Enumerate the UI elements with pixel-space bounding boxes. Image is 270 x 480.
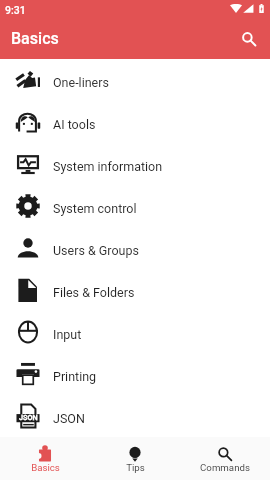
button[interactable]: System information xyxy=(0,143,270,185)
staticText: Printing xyxy=(53,369,97,384)
button[interactable]: AI tools xyxy=(0,101,270,143)
staticText: AI tools xyxy=(53,117,96,132)
button[interactable]: One-liners xyxy=(0,59,270,101)
staticText: System control xyxy=(53,201,137,216)
button[interactable]: Tips xyxy=(90,437,180,480)
staticText: Basics xyxy=(31,462,60,473)
button[interactable]: Commands xyxy=(180,437,270,480)
button[interactable]: Files & Folders xyxy=(0,269,270,311)
staticText: 9:31 xyxy=(5,4,26,16)
button[interactable]: Input xyxy=(0,311,270,353)
staticText: Users & Groups xyxy=(53,243,139,258)
button[interactable]: Printing xyxy=(0,353,270,395)
staticText: Files & Folders xyxy=(53,285,135,300)
staticText: Input xyxy=(53,327,82,342)
button[interactable]: Users & Groups xyxy=(0,227,270,269)
button[interactable]: Basics xyxy=(0,437,90,480)
staticText: Tips xyxy=(126,462,145,473)
staticText: JSON xyxy=(53,411,85,426)
staticText: One-liners xyxy=(53,75,109,90)
button[interactable]: System control xyxy=(0,185,270,227)
button[interactable]: JSON xyxy=(0,395,270,437)
staticText: System information xyxy=(53,159,163,174)
staticText: JSON xyxy=(19,413,38,422)
button[interactable]: Search xyxy=(236,26,262,52)
staticText: Basics xyxy=(11,29,59,48)
staticText: Commands xyxy=(200,462,250,473)
